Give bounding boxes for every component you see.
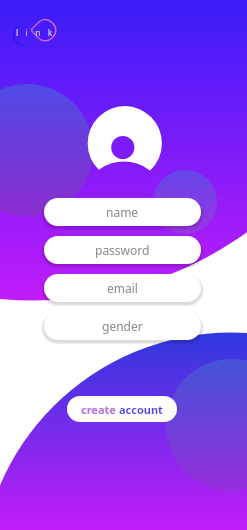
button[interactable]: email <box>44 274 201 302</box>
button[interactable]: name <box>44 198 201 226</box>
button[interactable]: password <box>44 236 201 264</box>
staticText: account <box>119 402 163 417</box>
staticText: gender <box>102 318 143 334</box>
button[interactable]: create <box>67 396 177 422</box>
staticText: email <box>107 280 138 296</box>
staticText: name <box>106 204 139 220</box>
staticText: create <box>81 402 119 417</box>
staticText: l i n k <box>16 27 56 39</box>
button[interactable]: gender <box>44 312 201 340</box>
staticText: password <box>95 242 150 258</box>
